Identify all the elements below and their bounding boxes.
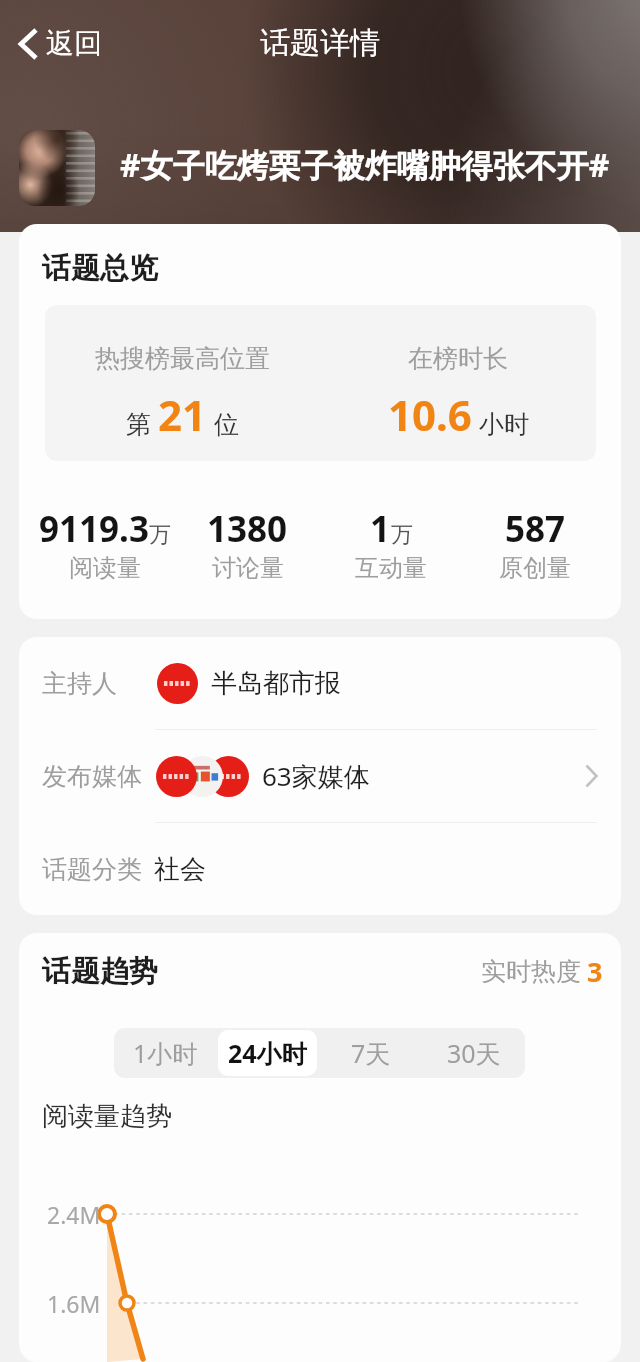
button[interactable]: 30天 bbox=[424, 1030, 523, 1076]
staticText: 1 bbox=[370, 505, 391, 553]
staticText: 第 bbox=[126, 409, 151, 440]
staticText: 原创量 bbox=[499, 553, 571, 583]
staticText: 小时 bbox=[479, 409, 529, 440]
staticText: 24小时 bbox=[228, 1036, 307, 1070]
staticText: 社会 bbox=[154, 853, 206, 886]
staticText: 在榜时长 bbox=[408, 343, 508, 374]
staticText: 63家媒体 bbox=[262, 758, 370, 794]
staticText: 1380 bbox=[207, 505, 288, 553]
staticText: 万 bbox=[391, 521, 413, 549]
button[interactable]: 7天 bbox=[321, 1030, 420, 1076]
staticText: 半岛都市报 bbox=[211, 667, 341, 700]
button[interactable]: 1小时 bbox=[116, 1030, 214, 1076]
button[interactable]: 发布媒体 bbox=[19, 730, 621, 822]
staticText: 3 bbox=[587, 953, 603, 990]
staticText: 讨论量 bbox=[212, 553, 284, 583]
staticText: 10.6 bbox=[388, 386, 472, 443]
staticText: 互动量 bbox=[355, 553, 427, 583]
staticText: 1小时 bbox=[133, 1036, 198, 1070]
staticText: 30天 bbox=[447, 1036, 501, 1070]
staticText: 2.4M bbox=[47, 1199, 101, 1230]
staticText: 话题趋势 bbox=[42, 953, 158, 990]
button[interactable]: 主持人 bbox=[19, 637, 621, 729]
staticText: 话题详情 bbox=[260, 24, 380, 62]
staticText: 发布媒体 bbox=[42, 761, 142, 792]
staticText: 587 bbox=[505, 505, 566, 553]
staticText: 21 bbox=[158, 386, 207, 443]
staticText: 主持人 bbox=[42, 668, 117, 699]
staticText: 返回 bbox=[46, 26, 102, 61]
staticText: 位 bbox=[214, 409, 239, 440]
staticText: 阅读量趋势 bbox=[42, 1100, 172, 1133]
staticText: 7天 bbox=[351, 1036, 391, 1070]
staticText: 9119.3 bbox=[39, 505, 149, 553]
staticText: 话题分类 bbox=[42, 854, 142, 885]
staticText: 热搜榜最高位置 bbox=[95, 343, 270, 374]
staticText: 实时热度 bbox=[481, 956, 581, 987]
button[interactable]: 返回 bbox=[10, 17, 111, 70]
staticText: 万 bbox=[149, 521, 171, 549]
staticText: 话题总览 bbox=[42, 250, 158, 287]
staticText: 阅读量 bbox=[69, 553, 141, 583]
staticText: #女子吃烤栗子被炸嘴肿得张不开# bbox=[120, 143, 610, 187]
other: More media bbox=[585, 764, 598, 788]
staticText: 1.6M bbox=[47, 1288, 101, 1319]
button[interactable]: 24小时 bbox=[218, 1030, 317, 1076]
